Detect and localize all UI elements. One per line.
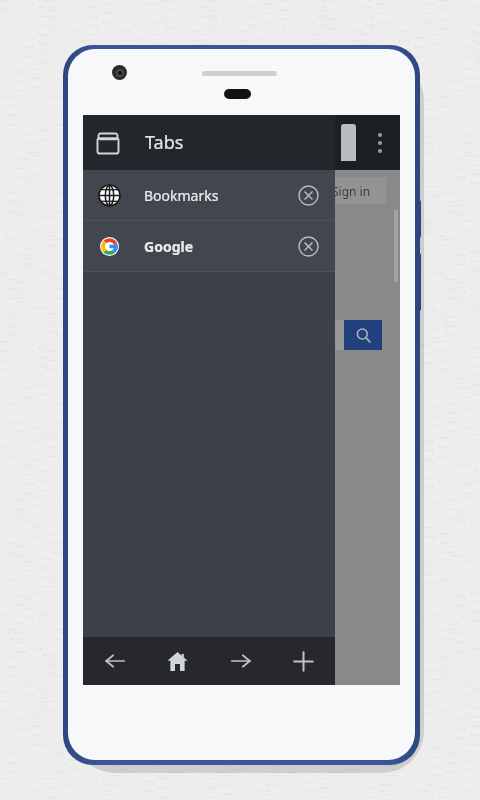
staticText: Tabs: [145, 130, 184, 155]
button[interactable]: Home: [146, 637, 209, 685]
button[interactable]: Close Bookmarks tab: [291, 178, 325, 212]
button[interactable]: Back: [83, 637, 146, 685]
button[interactable]: Tabs: [83, 115, 335, 170]
button[interactable]: More options: [360, 115, 400, 170]
button[interactable]: Google: [83, 221, 335, 271]
staticText: Google: [144, 237, 194, 256]
staticText: Bookmarks: [144, 186, 219, 205]
button[interactable]: Search: [344, 320, 382, 350]
button[interactable]: Forward: [209, 637, 272, 685]
button[interactable]: Close Google tab: [291, 229, 325, 263]
staticText: Sign in: [332, 183, 371, 199]
button[interactable]: Sign in: [316, 177, 386, 204]
button[interactable]: New tab: [272, 637, 335, 685]
button[interactable]: Bookmarks: [83, 170, 335, 220]
